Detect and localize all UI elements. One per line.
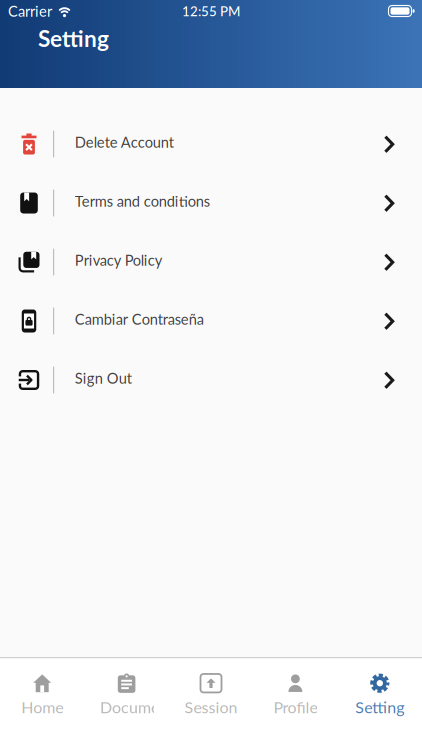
- staticText: Cambiar Contraseña: [75, 310, 204, 328]
- button[interactable]: Setting: [338, 672, 422, 716]
- button[interactable]: Terms and conditions: [0, 173, 422, 232]
- button[interactable]: Delete Account: [0, 114, 422, 173]
- button[interactable]: Session: [169, 672, 253, 716]
- staticText: Delete Account: [75, 133, 174, 151]
- button[interactable]: Profile: [253, 672, 338, 716]
- staticText: Documents: [100, 698, 181, 716]
- staticText: Profile: [273, 698, 317, 716]
- staticText: Setting: [355, 698, 404, 716]
- staticText: Carrier: [8, 2, 52, 20]
- button[interactable]: Documents: [84, 672, 169, 716]
- staticText: Privacy Policy: [75, 251, 163, 269]
- staticText: Sign Out: [75, 369, 132, 387]
- staticText: 12:55 PM: [182, 3, 240, 19]
- button[interactable]: Home: [0, 672, 84, 716]
- staticText: Home: [21, 698, 63, 716]
- staticText: Setting: [38, 25, 109, 51]
- button[interactable]: Privacy Policy: [0, 232, 422, 291]
- staticText: Session: [184, 698, 237, 716]
- button[interactable]: Sign Out: [0, 350, 422, 409]
- button[interactable]: Cambiar Contraseña: [0, 291, 422, 350]
- staticText: Terms and conditions: [75, 192, 210, 210]
